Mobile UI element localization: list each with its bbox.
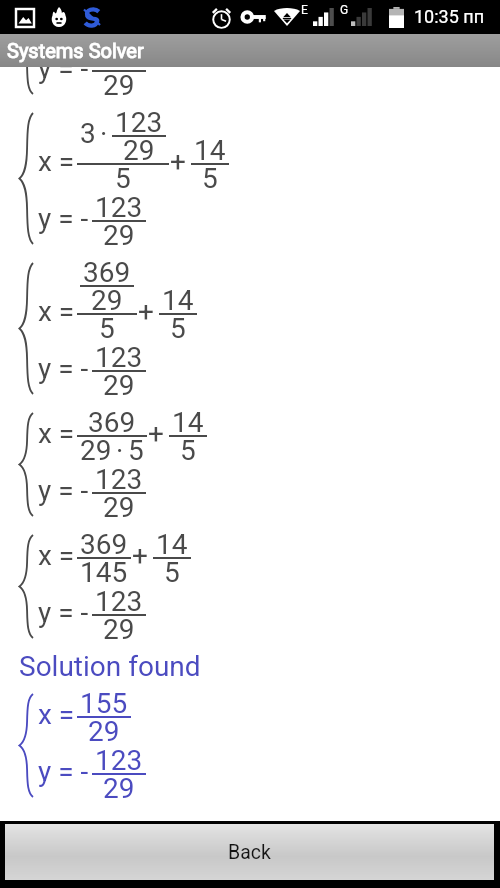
staticText: 29	[80, 434, 112, 467]
staticText: ·	[100, 117, 108, 150]
staticText: 5	[128, 434, 144, 467]
staticText: 29	[103, 772, 135, 805]
staticText: G	[340, 3, 349, 17]
staticText: 10:35 пп	[414, 6, 485, 27]
staticText: x =	[38, 539, 75, 572]
staticText: 14	[172, 406, 204, 439]
staticText: y = -	[38, 755, 89, 788]
other: Mobile signal	[313, 8, 335, 26]
staticText: 123	[95, 67, 143, 74]
staticText: 5	[115, 162, 131, 195]
staticText: ·	[116, 434, 124, 467]
staticText: 145	[80, 556, 128, 589]
other: Mobile signal 2	[351, 8, 373, 26]
other: App notification	[82, 7, 102, 28]
staticText: +	[138, 295, 154, 328]
other: Wi-Fi	[274, 8, 300, 26]
staticText: 5	[180, 434, 196, 467]
staticText: y = -	[38, 202, 89, 235]
staticText: y = -	[38, 352, 89, 385]
staticText: 123	[95, 585, 143, 618]
staticText: x =	[38, 295, 75, 328]
other: Flame notification	[50, 7, 68, 27]
other: Alarm set	[210, 7, 233, 28]
staticText: 123	[95, 341, 143, 374]
staticText: x =	[38, 145, 75, 178]
staticText: 369	[88, 406, 136, 439]
staticText: 155	[80, 687, 128, 720]
button[interactable]: Back	[5, 824, 494, 880]
other: Screen lock	[242, 10, 266, 24]
staticText: 14	[162, 284, 194, 317]
staticText: 123	[95, 191, 143, 224]
staticText: 369	[83, 256, 131, 289]
staticText: Back	[228, 841, 271, 864]
staticText: 5	[164, 556, 180, 589]
staticText: 29	[91, 284, 123, 317]
staticText: E	[301, 3, 308, 17]
staticText: 29	[103, 491, 135, 524]
staticText: y = -	[38, 67, 89, 85]
other: Gallery notification	[16, 9, 34, 27]
staticText: 123	[95, 744, 143, 777]
staticText: 3	[80, 117, 96, 150]
staticText: 29	[103, 69, 135, 102]
staticText: +	[170, 145, 186, 178]
staticText: 5	[202, 162, 218, 195]
staticText: 123	[95, 463, 143, 496]
staticText: 29	[103, 613, 135, 646]
staticText: y = -	[38, 474, 89, 507]
staticText: +	[132, 539, 148, 572]
staticText: Solution found	[19, 650, 201, 683]
staticText: 29	[103, 369, 135, 402]
other: Battery	[389, 7, 404, 28]
staticText: 5	[99, 312, 115, 345]
staticText: x =	[38, 417, 75, 450]
staticText: 29	[103, 219, 135, 252]
staticText: 5	[170, 312, 186, 345]
staticText: y = -	[38, 596, 89, 629]
staticText: 123	[115, 106, 163, 139]
staticText: 14	[156, 528, 188, 561]
staticText: 369	[80, 528, 128, 561]
staticText: +	[148, 417, 164, 450]
staticText: x =	[38, 698, 75, 731]
staticText: 14	[194, 134, 226, 167]
staticText: 29	[123, 134, 155, 167]
staticText: 29	[88, 715, 120, 748]
staticText: Systems Solver	[7, 39, 144, 62]
